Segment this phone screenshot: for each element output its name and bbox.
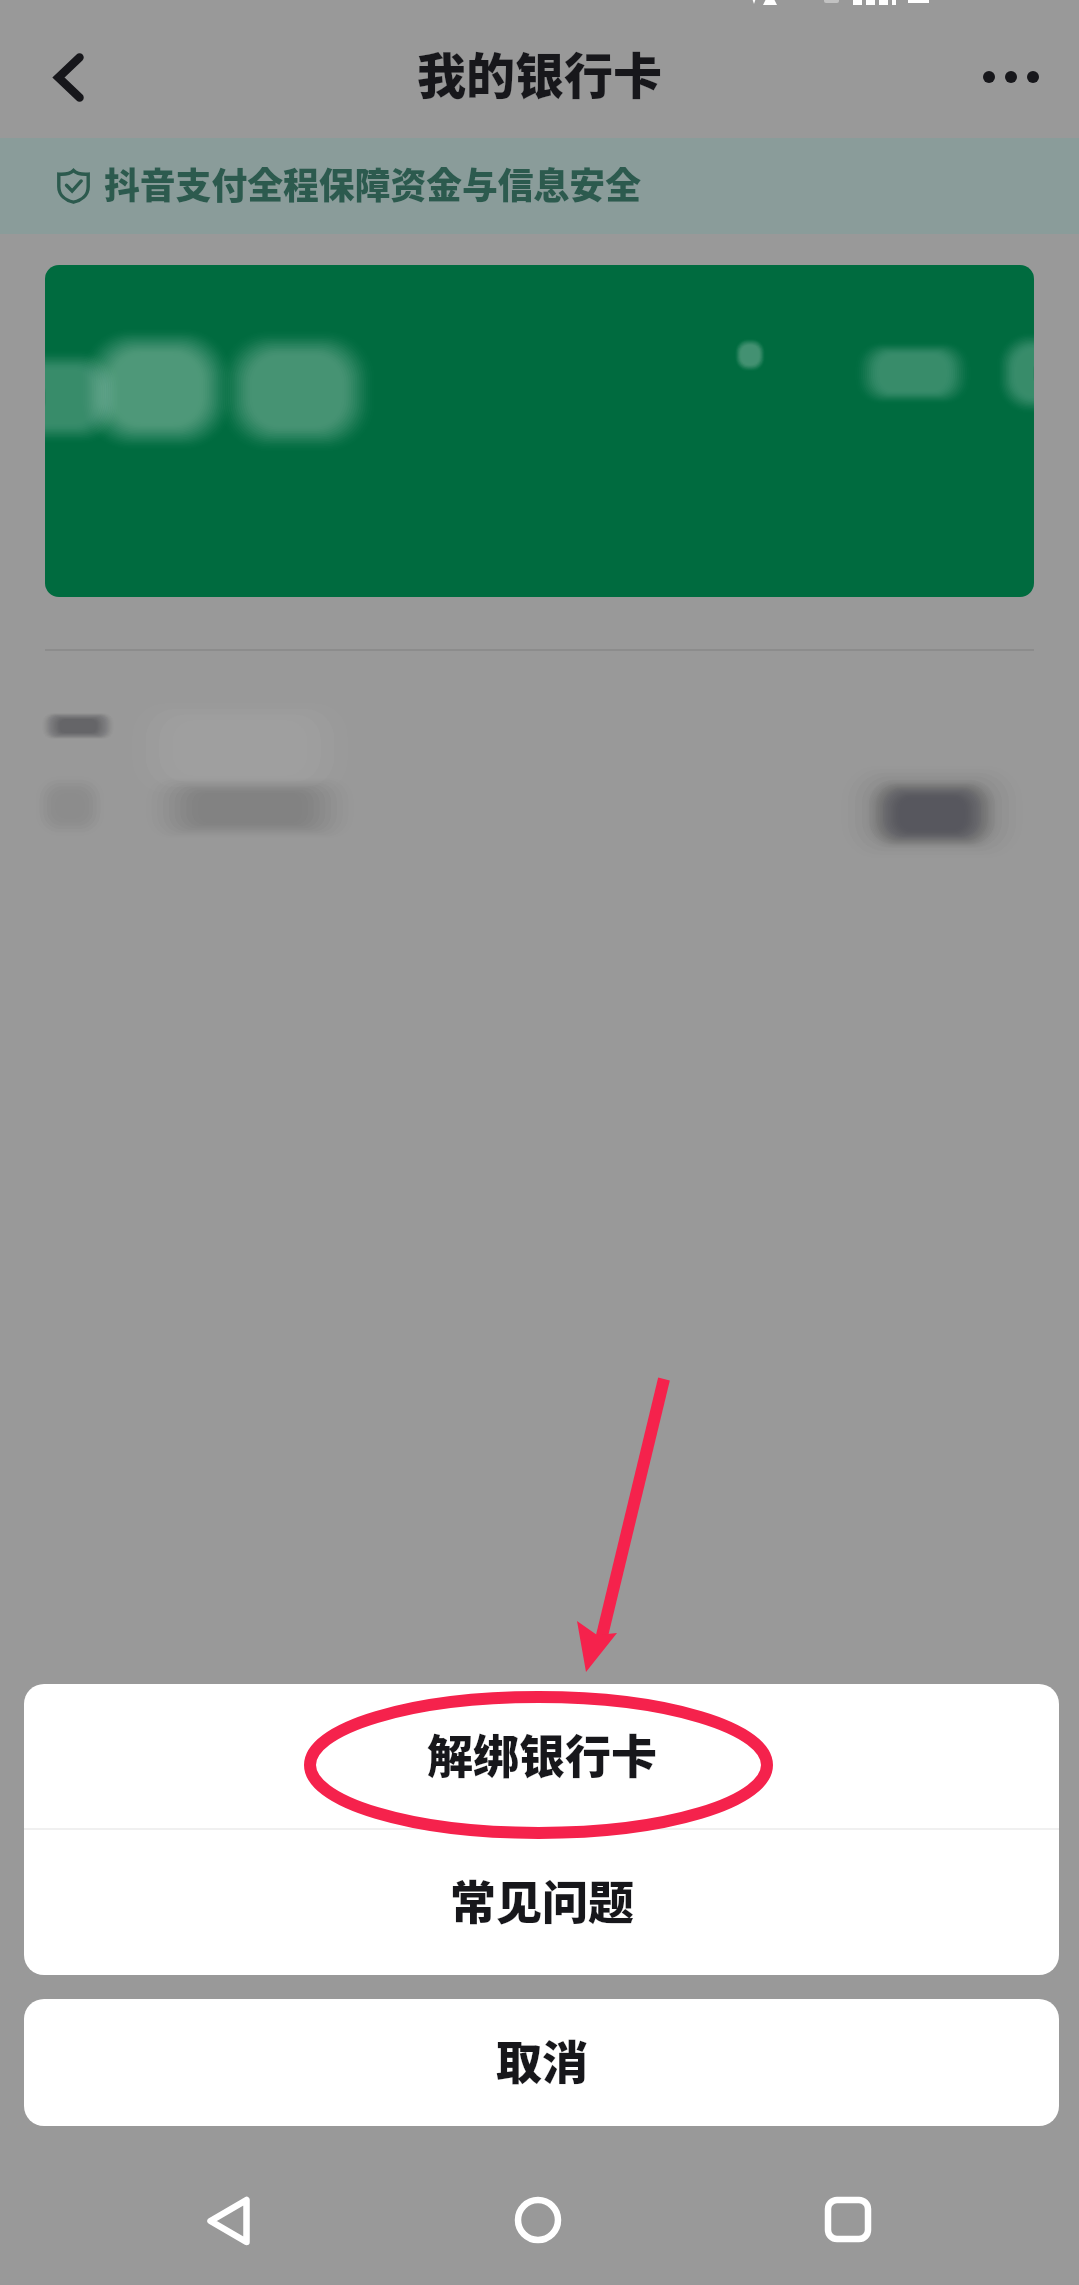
button[interactable]: Back (22, 32, 112, 122)
button[interactable]: 取消 (24, 1999, 1059, 2126)
staticText: 抖音支付全程保障资金与信息安全 (104, 157, 641, 209)
staticText: 我的银行卡 (417, 37, 663, 108)
button[interactable]: Home (492, 2174, 584, 2266)
staticText: 解绑银行卡 (427, 1720, 657, 1787)
button[interactable]: Back (181, 2175, 273, 2267)
button[interactable]: 解绑银行卡 (24, 1684, 1059, 1828)
staticText: 常见问题 (450, 1866, 634, 1933)
button[interactable]: Recent apps (800, 2175, 892, 2267)
button[interactable] (45, 265, 1034, 597)
staticText: 取消 (496, 2026, 588, 2093)
button[interactable]: 常见问题 (24, 1830, 1059, 1975)
button[interactable]: More options (966, 32, 1056, 122)
